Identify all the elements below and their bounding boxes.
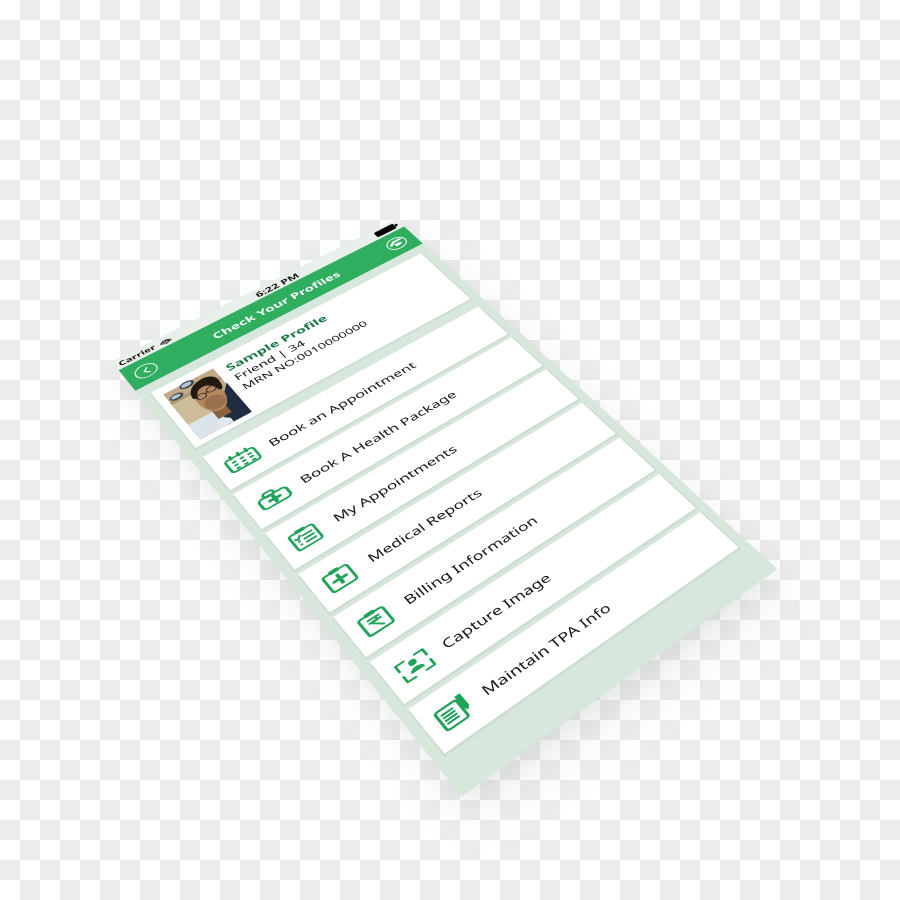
button[interactable]: Medical Reports xyxy=(11,456,349,525)
staticText: Carrier xyxy=(4,2,46,18)
staticText: MRN NO:0010000000 xyxy=(89,142,241,162)
staticText: Check Your Profiles xyxy=(101,33,260,55)
button[interactable]: My Appointments xyxy=(11,379,349,448)
button[interactable]: Capture Image xyxy=(11,610,349,679)
button[interactable]: Maintain TPA Info xyxy=(11,687,349,756)
staticText: Book an Appointment xyxy=(71,248,246,271)
button[interactable]: Home xyxy=(324,31,350,57)
staticText: Billing Information xyxy=(71,556,222,579)
staticText: My Appointments xyxy=(71,402,213,425)
button[interactable]: Book A Health Package xyxy=(11,302,349,371)
staticText: Friend | 34 xyxy=(89,120,173,142)
staticText: Book A Health Package xyxy=(71,325,256,348)
staticText: Sample Profile xyxy=(89,97,211,120)
button[interactable]: Billing Information xyxy=(11,533,349,602)
button[interactable]: Book an Appointment xyxy=(11,225,349,294)
button[interactable]: Back xyxy=(9,31,35,57)
staticText: Capture Image xyxy=(71,633,191,656)
staticText: 6:22 PM xyxy=(169,1,223,20)
staticText: Medical Reports xyxy=(71,479,200,502)
staticText: Maintain TPA Info xyxy=(71,710,213,733)
button[interactable]: Sample Profile xyxy=(11,84,349,206)
